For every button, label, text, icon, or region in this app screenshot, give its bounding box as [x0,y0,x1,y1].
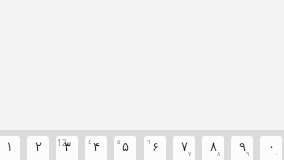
staticText: ۷ [181,139,188,154]
button[interactable]: two [27,136,49,160]
staticText: ٧ [188,150,192,158]
staticText: ۳ [64,139,71,154]
staticText: 12 [57,137,67,149]
staticText: ۱ [6,139,13,154]
staticText: ۰ [268,139,275,154]
staticText: ۹ [239,139,246,154]
button[interactable]: nine [231,136,253,160]
button[interactable]: four [85,136,107,160]
button[interactable]: eight [202,136,224,160]
staticText: ۶ [152,139,159,154]
staticText: ٤ [88,138,92,146]
button[interactable]: five [114,136,136,160]
staticText: ۸ [210,139,217,154]
staticText: ٨ [217,150,221,158]
staticText: ٠ [275,150,279,158]
staticText: ٥ [117,138,121,146]
button[interactable]: seven [173,136,195,160]
staticText: ۵ [122,139,129,154]
staticText: ٩ [246,150,250,158]
staticText: ۴ [93,139,100,154]
button[interactable]: six [144,136,166,160]
staticText: ۲ [35,139,42,154]
button[interactable]: one [0,136,20,160]
button[interactable]: three [56,136,78,160]
button[interactable]: zero [260,136,282,160]
staticText: ٦ [147,138,151,146]
